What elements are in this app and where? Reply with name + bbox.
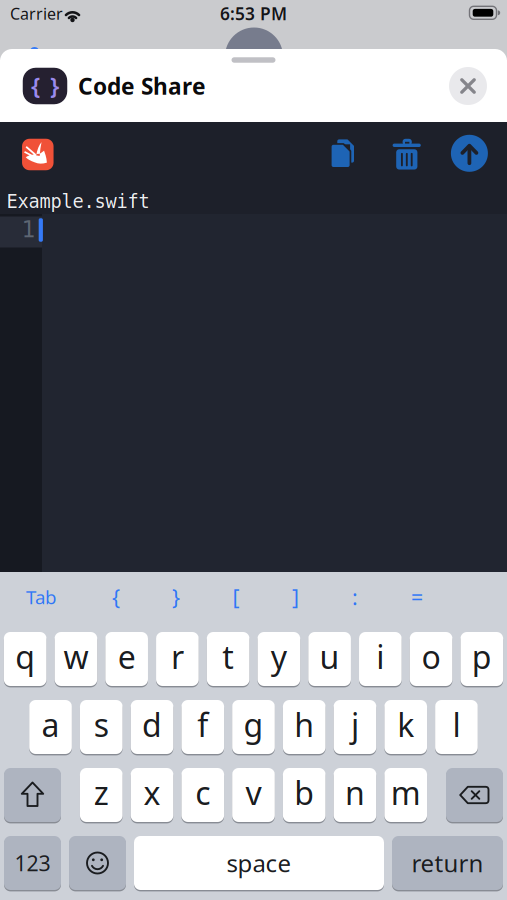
staticText: v bbox=[245, 771, 261, 814]
staticText: Code Share bbox=[78, 71, 206, 101]
staticText: : bbox=[352, 583, 358, 611]
staticText: b bbox=[294, 771, 314, 814]
staticText: 6:53 PM bbox=[220, 2, 287, 25]
staticText: ] bbox=[292, 583, 299, 611]
staticText: f bbox=[197, 703, 208, 746]
staticText: space bbox=[226, 847, 291, 879]
staticText: r bbox=[171, 635, 184, 678]
staticText: g bbox=[243, 703, 263, 746]
staticText: e bbox=[118, 635, 136, 678]
staticText: h bbox=[294, 703, 314, 746]
staticText: j bbox=[351, 703, 359, 746]
staticText: s bbox=[94, 703, 109, 746]
staticText: k bbox=[397, 703, 414, 746]
staticText: } bbox=[172, 583, 180, 611]
staticText: d bbox=[142, 703, 162, 746]
staticText: l bbox=[452, 703, 460, 746]
staticText: Carrier bbox=[10, 3, 63, 24]
staticText: p bbox=[472, 635, 492, 678]
staticText: [ bbox=[232, 583, 239, 611]
staticText: { bbox=[31, 70, 40, 101]
staticText: return bbox=[411, 847, 483, 879]
staticText: x bbox=[143, 771, 160, 814]
staticText: u bbox=[320, 635, 340, 678]
staticText: } bbox=[50, 70, 59, 101]
staticText: q bbox=[15, 635, 35, 678]
staticText: i bbox=[376, 635, 384, 678]
staticText: o bbox=[422, 635, 441, 678]
staticText: Example.swift bbox=[6, 191, 149, 212]
staticText: c bbox=[195, 771, 210, 814]
staticText: t bbox=[222, 635, 234, 678]
staticText: a bbox=[41, 703, 59, 746]
staticText: 1 bbox=[21, 217, 35, 242]
staticText: m bbox=[391, 771, 421, 814]
staticText: z bbox=[94, 771, 109, 814]
staticText: y bbox=[271, 635, 287, 678]
staticText: 123 bbox=[14, 849, 50, 877]
staticText: Tab bbox=[26, 585, 56, 609]
staticText: { bbox=[112, 583, 120, 611]
staticText: w bbox=[63, 635, 88, 678]
staticText: n bbox=[345, 771, 365, 814]
staticText: = bbox=[411, 583, 423, 611]
